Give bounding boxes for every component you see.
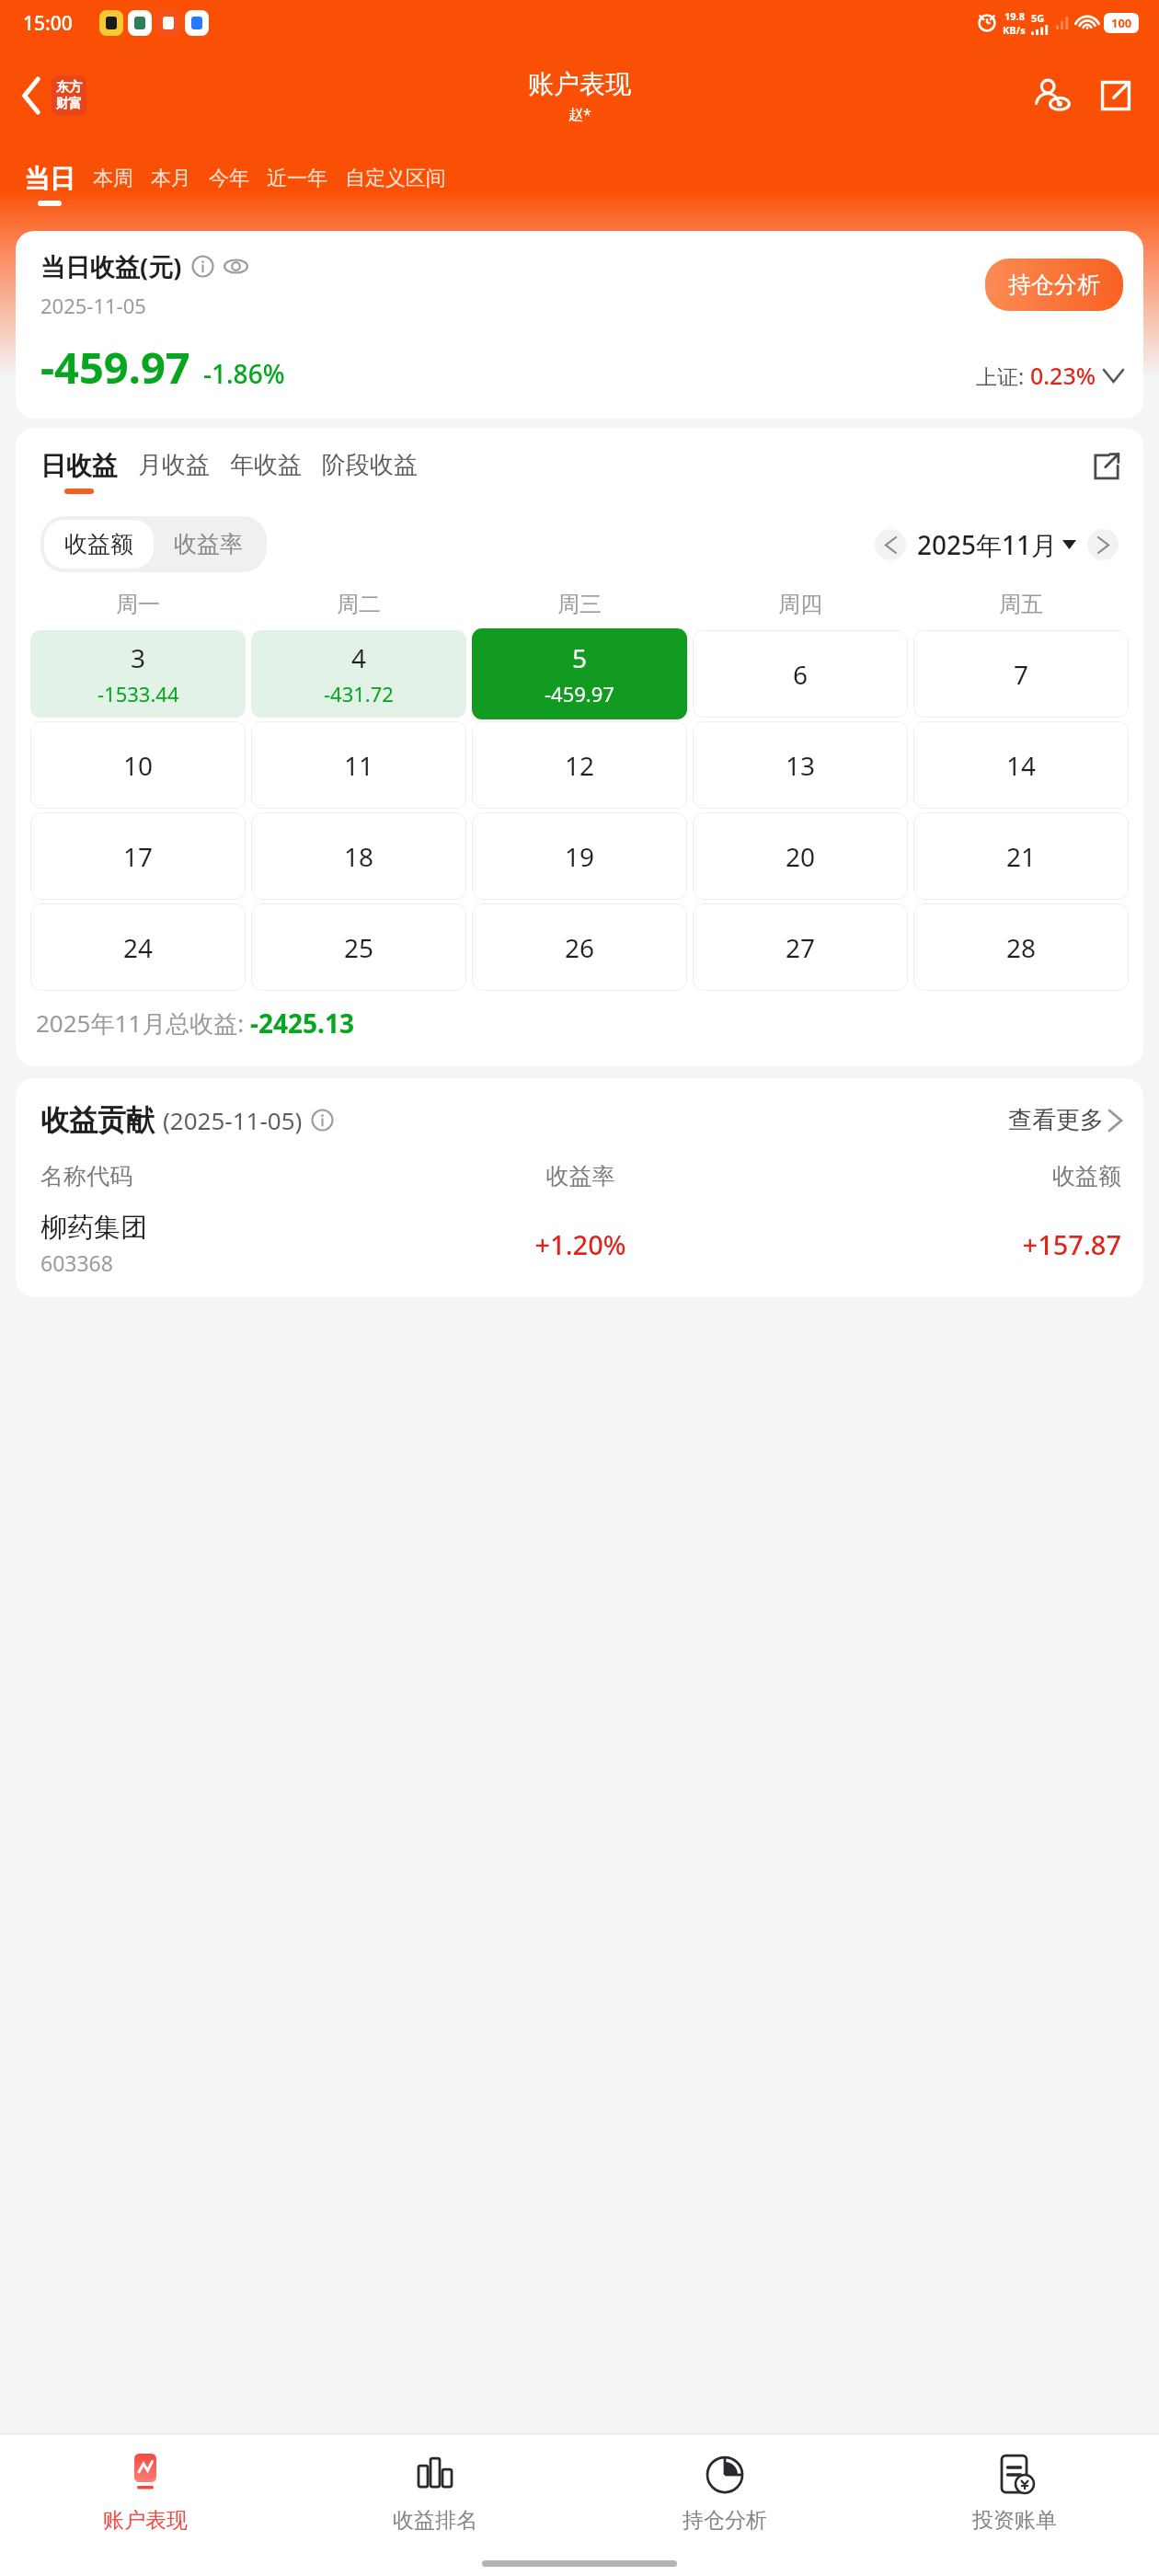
button[interactable]: 20 (693, 812, 908, 900)
button[interactable]: 隐藏金额 (224, 254, 248, 279)
staticText: 0.23% (1030, 360, 1096, 391)
button[interactable]: 月收益 (138, 450, 230, 492)
staticText: 账户表现 (528, 68, 631, 100)
staticText: 18 (344, 839, 374, 874)
staticText: 28 (1006, 930, 1037, 965)
button[interactable]: 上证: (976, 360, 1123, 397)
button[interactable]: 24 (30, 903, 246, 991)
staticText: 收益贡献 (40, 1102, 155, 1138)
staticText: +157.87 (761, 1226, 1121, 1262)
staticText: 2025年11月 (917, 527, 1058, 562)
button[interactable]: 分享 (1095, 75, 1137, 117)
button[interactable]: 4 (251, 630, 466, 718)
staticText: 25 (344, 930, 374, 965)
staticText: -459.97 (40, 338, 190, 397)
button[interactable]: 持仓分析 (579, 2434, 869, 2550)
button[interactable]: 下个月 (1087, 529, 1119, 560)
staticText: 周三 (469, 591, 690, 618)
staticText: -459.97 (545, 680, 614, 707)
staticText: 24 (123, 930, 154, 965)
staticText: 21 (1006, 839, 1037, 874)
button[interactable]: 21 (913, 812, 1129, 900)
button[interactable]: 查看更多 (1008, 1105, 1121, 1135)
staticText: 收益率 (400, 1162, 761, 1190)
staticText: 财富 (56, 96, 82, 112)
button[interactable]: 返回 东方财富 (15, 70, 92, 121)
button[interactable]: 柳药集团 (40, 1211, 1121, 1277)
staticText: 东方 (56, 79, 82, 96)
staticText: 本月 (151, 166, 191, 191)
staticText: 日收益 (40, 450, 118, 482)
button[interactable]: 28 (913, 903, 1129, 991)
button[interactable]: 3 (30, 630, 246, 718)
staticText: 周一 (28, 591, 248, 618)
staticText: 收益额 (761, 1162, 1121, 1190)
staticText: 13 (786, 748, 816, 783)
staticText: 17 (123, 839, 154, 874)
button[interactable]: 账户 (1030, 74, 1074, 118)
staticText: 持仓分析 (683, 2507, 767, 2534)
button[interactable]: 17 (30, 812, 246, 900)
button[interactable]: 19 (472, 812, 687, 900)
button[interactable]: 7 (913, 630, 1129, 718)
button[interactable]: 12 (472, 721, 687, 809)
button[interactable]: 收益率 (154, 520, 263, 569)
staticText: 12 (565, 748, 595, 783)
button[interactable]: 投资账单 (869, 2434, 1159, 2550)
staticText: 年收益 (230, 450, 302, 480)
button[interactable]: 本月 (135, 162, 193, 206)
button[interactable]: 5 (472, 628, 687, 719)
staticText: 周二 (248, 591, 469, 618)
staticText: 15:00 (23, 10, 73, 37)
button[interactable]: 2025年11月 (917, 527, 1076, 562)
staticText: 名称代码 (40, 1162, 400, 1190)
button[interactable]: 13 (693, 721, 908, 809)
button[interactable]: 收益额 (44, 520, 154, 569)
button[interactable]: 说明 (191, 255, 214, 278)
staticText: 账户表现 (103, 2507, 188, 2534)
staticText: 持仓分析 (1008, 270, 1100, 299)
button[interactable]: 25 (251, 903, 466, 991)
staticText: 上证: (976, 362, 1030, 390)
button[interactable]: 收益排名 (290, 2434, 579, 2550)
button[interactable]: 分享收益 (1092, 450, 1121, 481)
button[interactable]: 10 (30, 721, 246, 809)
button[interactable]: 本周 (77, 162, 135, 206)
button[interactable]: 阶段收益 (322, 450, 418, 492)
staticText: 100 (1111, 15, 1132, 31)
staticText: 19.8 (1004, 9, 1025, 23)
button[interactable]: 今年 (193, 162, 251, 206)
button[interactable]: 年收益 (230, 450, 322, 492)
staticText: 10 (123, 748, 154, 783)
button[interactable]: 上个月 (875, 529, 906, 560)
staticText: 自定义区间 (345, 166, 446, 191)
button[interactable]: 账户表现 (0, 2434, 290, 2550)
button[interactable]: 说明 (311, 1109, 334, 1132)
staticText: KB/s (1003, 23, 1026, 37)
staticText: 20 (786, 839, 816, 874)
staticText: 周四 (690, 591, 911, 618)
button[interactable]: 日收益 (40, 450, 138, 494)
button[interactable]: 27 (693, 903, 908, 991)
staticText: (2025-11-05) (163, 1104, 303, 1136)
staticText: 查看更多 (1008, 1105, 1104, 1135)
staticText: 收益率 (174, 530, 243, 558)
button[interactable]: 持仓分析 (985, 259, 1123, 311)
button[interactable]: 自定义区间 (329, 162, 448, 206)
button[interactable]: 18 (251, 812, 466, 900)
staticText: 4 (351, 640, 367, 675)
staticText: 阶段收益 (322, 450, 418, 480)
staticText: 26 (565, 930, 595, 965)
button[interactable]: 26 (472, 903, 687, 991)
staticText: 赵* (568, 104, 591, 124)
staticText: 11 (344, 748, 374, 783)
staticText: 5 (572, 640, 588, 675)
staticText: 5G (1031, 11, 1045, 25)
staticText: -1533.44 (98, 680, 179, 707)
button[interactable]: 近一年 (251, 162, 329, 206)
button[interactable]: 14 (913, 721, 1129, 809)
button[interactable]: 6 (693, 630, 908, 718)
button[interactable]: 11 (251, 721, 466, 809)
staticText: 近一年 (267, 166, 327, 191)
button[interactable]: 当日 (24, 159, 77, 210)
